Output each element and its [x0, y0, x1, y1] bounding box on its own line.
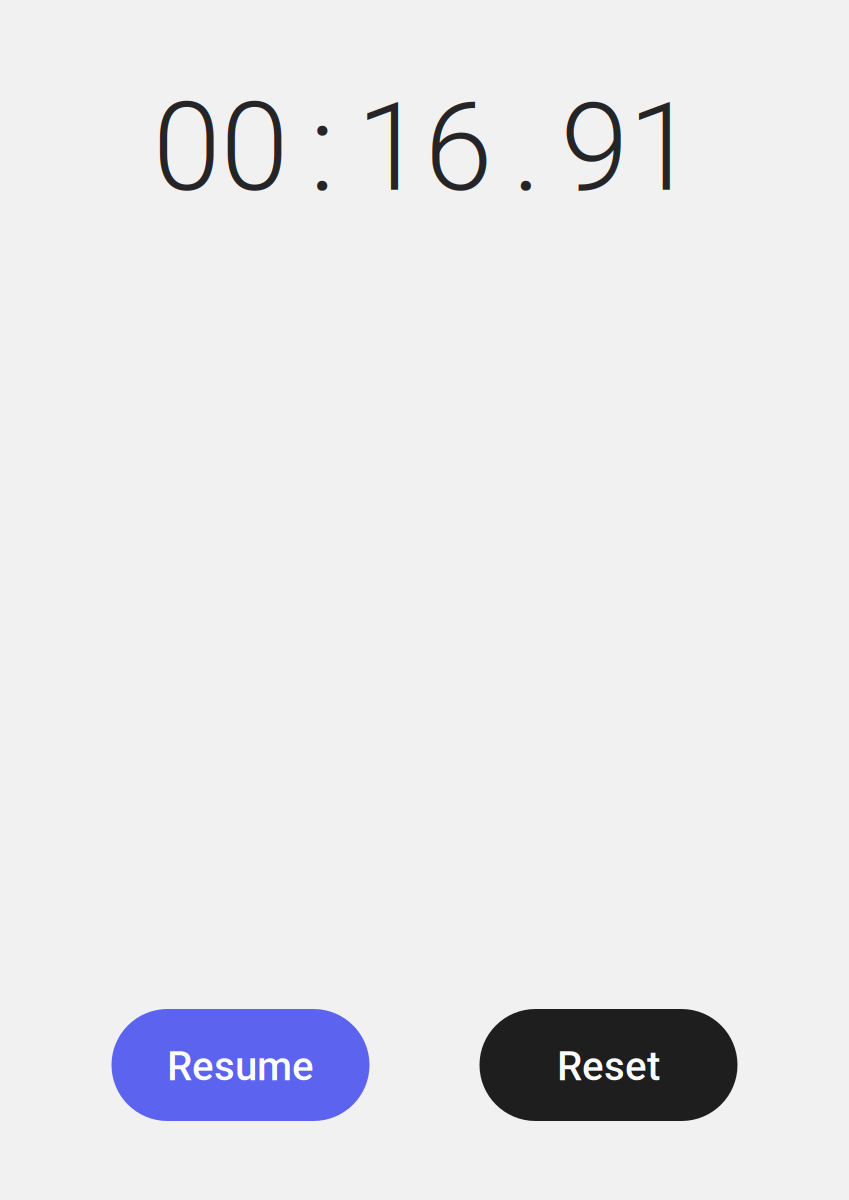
staticText: . — [512, 76, 541, 220]
button[interactable]: Reset — [479, 1009, 737, 1121]
staticText: 0 — [221, 76, 289, 220]
staticText: 1 — [628, 76, 696, 220]
staticText: 0 — [153, 76, 221, 220]
staticText: Resume — [167, 1043, 314, 1090]
button[interactable]: Resume — [111, 1009, 369, 1121]
staticText: Reset — [557, 1043, 660, 1090]
staticText: 9 — [560, 76, 628, 220]
staticText: 1 — [356, 76, 424, 220]
staticText: : — [310, 76, 336, 220]
staticText: 6 — [424, 76, 492, 220]
